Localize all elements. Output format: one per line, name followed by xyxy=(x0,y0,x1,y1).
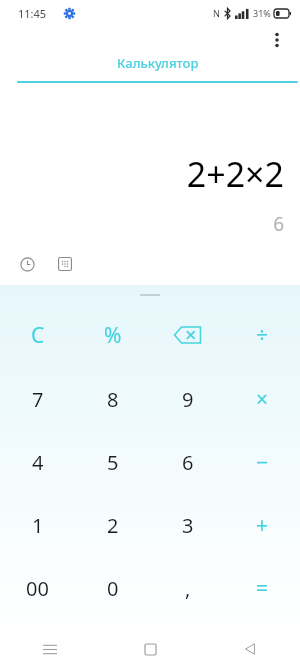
staticText: 9 xyxy=(182,386,194,413)
staticText: = xyxy=(256,574,269,603)
staticText: 2+2×2 xyxy=(0,151,284,197)
button[interactable]: Backspace xyxy=(150,303,225,367)
staticText: , xyxy=(185,575,191,602)
button[interactable]: Калькулятор xyxy=(15,54,300,83)
staticText: N xyxy=(213,7,220,19)
staticText: 1 xyxy=(32,512,44,539)
staticText: + xyxy=(256,511,269,540)
button[interactable]: Recents xyxy=(0,632,100,666)
button[interactable]: , xyxy=(150,557,225,620)
button[interactable]: × xyxy=(225,367,300,431)
button[interactable]: History xyxy=(16,253,38,275)
button[interactable]: = xyxy=(225,557,300,620)
button[interactable]: + xyxy=(225,494,300,557)
button[interactable]: 00 xyxy=(0,557,75,620)
button[interactable]: ÷ xyxy=(225,303,300,367)
staticText: 7 xyxy=(32,386,44,413)
button[interactable]: − xyxy=(225,431,300,494)
staticText: 3 xyxy=(182,512,194,539)
button[interactable]: 5 xyxy=(75,431,150,494)
staticText: 6 xyxy=(182,449,194,476)
staticText: − xyxy=(256,448,269,477)
staticText: 00 xyxy=(26,575,49,602)
button[interactable]: 1 xyxy=(0,494,75,557)
staticText: × xyxy=(256,385,269,414)
button[interactable]: 0 xyxy=(75,557,150,620)
staticText: 31% xyxy=(253,7,271,19)
button[interactable]: 2 xyxy=(75,494,150,557)
button[interactable]: 6 xyxy=(150,431,225,494)
staticText: % xyxy=(104,321,122,350)
button[interactable]: Scientific keypad xyxy=(54,253,76,275)
staticText: 11:45 xyxy=(18,6,47,21)
button[interactable]: More options xyxy=(262,26,292,54)
button[interactable]: 3 xyxy=(150,494,225,557)
button[interactable]: C xyxy=(0,303,75,367)
button[interactable]: 7 xyxy=(0,367,75,431)
staticText: 5 xyxy=(107,449,119,476)
staticText: Калькулятор xyxy=(117,54,199,72)
staticText: 0 xyxy=(107,575,119,602)
staticText: 6 xyxy=(0,211,284,237)
button[interactable]: 9 xyxy=(150,367,225,431)
button[interactable]: % xyxy=(75,303,150,367)
staticText: 8 xyxy=(107,386,119,413)
staticText: C xyxy=(31,321,45,350)
staticText: ÷ xyxy=(256,321,269,350)
button[interactable]: 8 xyxy=(75,367,150,431)
button[interactable]: Back xyxy=(200,632,300,666)
button[interactable]: Home xyxy=(100,632,200,666)
button[interactable]: 4 xyxy=(0,431,75,494)
staticText: 4 xyxy=(32,449,44,476)
staticText: 2 xyxy=(107,512,119,539)
